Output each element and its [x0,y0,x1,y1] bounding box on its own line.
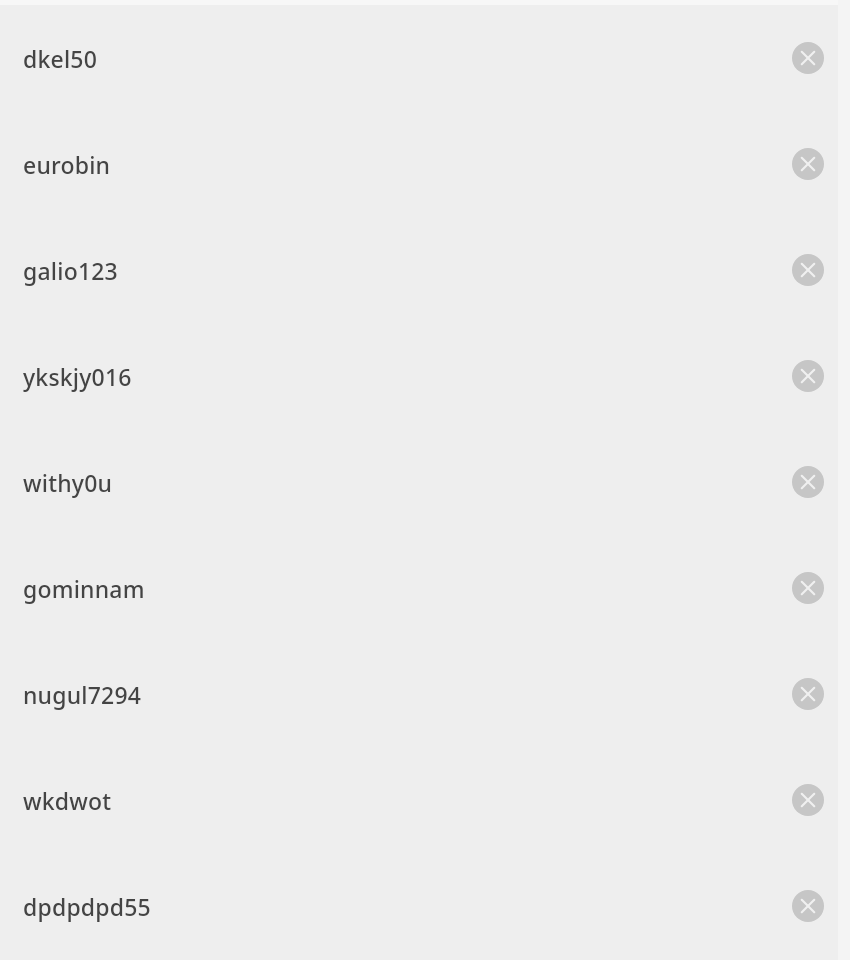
staticText: dkel50 [23,43,98,74]
button[interactable]: Remove [792,890,824,922]
staticText: wkdwot [23,785,112,816]
button[interactable]: nugul7294 [0,641,850,747]
button[interactable]: galio123 [0,217,850,323]
button[interactable]: Remove [792,148,824,180]
staticText: ykskjy016 [23,361,132,392]
staticText: dpdpdpd55 [23,891,151,922]
staticText: galio123 [23,255,118,286]
button[interactable]: Remove [792,784,824,816]
button[interactable]: ykskjy016 [0,323,850,429]
button[interactable]: Remove [792,42,824,74]
staticText: gominnam [23,573,145,604]
staticText: eurobin [23,149,111,180]
staticText: nugul7294 [23,679,142,710]
button[interactable]: Remove [792,572,824,604]
button[interactable]: withy0u [0,429,850,535]
button[interactable]: Remove [792,360,824,392]
button[interactable]: dkel50 [0,5,850,111]
button[interactable]: Remove [792,466,824,498]
button[interactable]: eurobin [0,111,850,217]
button[interactable]: dpdpdpd55 [0,853,850,959]
button[interactable]: gominnam [0,535,850,641]
button[interactable]: Remove [792,678,824,710]
button[interactable]: wkdwot [0,747,850,853]
staticText: withy0u [23,467,113,498]
button[interactable]: Remove [792,254,824,286]
